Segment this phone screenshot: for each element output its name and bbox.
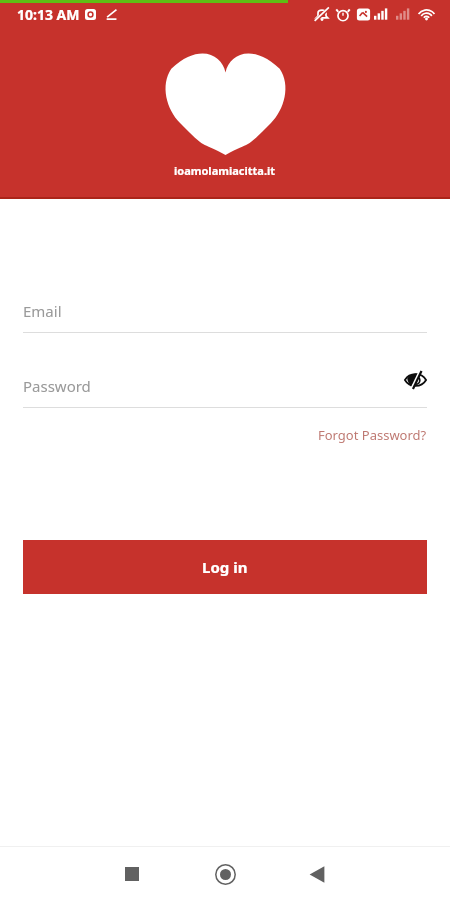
button[interactable]: Email (23, 300, 427, 333)
staticText: Forgot Password? (318, 426, 427, 444)
button[interactable]: Log in (23, 540, 427, 594)
button[interactable]: Password (23, 375, 427, 408)
staticText: ioamolamiacitta.it (174, 163, 276, 178)
button[interactable]: Recents (110, 852, 154, 896)
staticText: Password (23, 376, 91, 396)
button[interactable]: Back (295, 852, 339, 896)
button[interactable]: Forgot Password? (318, 426, 427, 444)
staticText: Log in (202, 557, 248, 577)
button[interactable]: Home (203, 852, 247, 896)
staticText: 10:13 AM (17, 5, 80, 24)
staticText: Email (23, 301, 62, 321)
